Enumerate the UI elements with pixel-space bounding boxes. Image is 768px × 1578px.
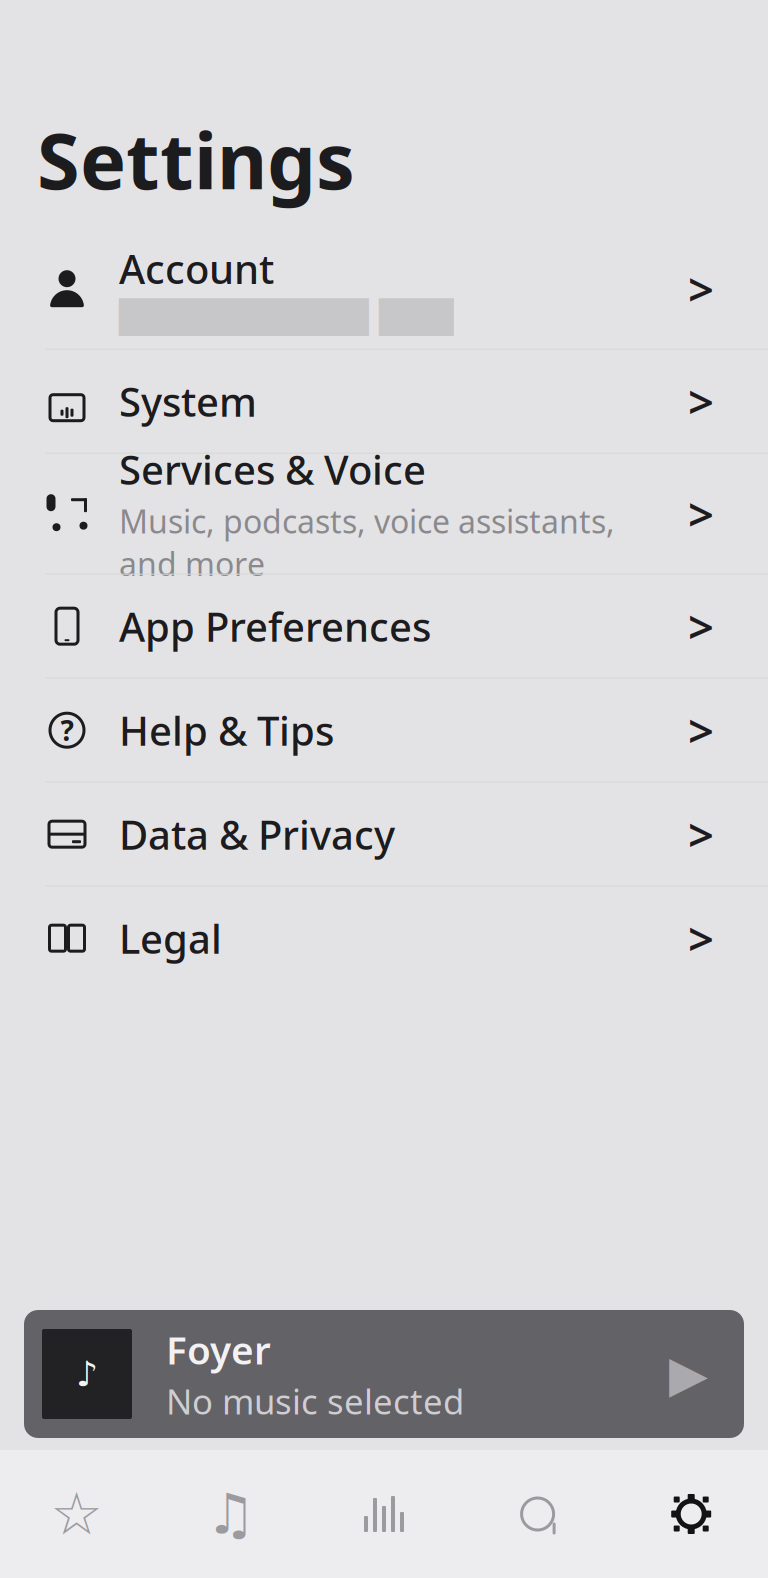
- staticText: Foyer: [166, 1324, 271, 1375]
- staticText: Data & Privacy: [119, 808, 395, 861]
- button[interactable]: ♪: [24, 1310, 744, 1438]
- button[interactable]: ?: [0, 679, 768, 782]
- staticText: >: [688, 908, 714, 968]
- button[interactable]: Services & Voice: [0, 454, 768, 574]
- staticText: No music selected: [166, 1378, 464, 1424]
- staticText: Settings: [37, 108, 355, 211]
- staticText: ♪: [76, 1354, 98, 1394]
- button[interactable]: Data & Privacy: [0, 783, 768, 886]
- staticText: ?: [60, 712, 73, 749]
- staticText: Services & Voice: [119, 443, 426, 496]
- staticText: >: [688, 371, 714, 431]
- staticText: Music, podcasts, voice assistants, and m…: [119, 500, 615, 585]
- button[interactable]: App Preferences: [0, 575, 768, 678]
- button[interactable]: Legal: [0, 887, 768, 990]
- staticText: Legal: [119, 912, 222, 965]
- button[interactable]: Account: [0, 229, 768, 349]
- staticText: Help & Tips: [119, 704, 334, 757]
- staticText: ▶: [669, 1345, 708, 1403]
- staticText: >: [688, 484, 714, 544]
- button[interactable]: Now Playing: [307, 1466, 461, 1562]
- staticText: >: [688, 259, 714, 319]
- staticText: System: [119, 375, 257, 428]
- staticText: >: [688, 804, 714, 864]
- staticText: App Preferences: [119, 600, 431, 653]
- button[interactable]: System: [0, 350, 768, 453]
- staticText: >: [688, 700, 714, 760]
- button[interactable]: Favorites: [0, 1466, 154, 1562]
- staticText: Account: [119, 242, 274, 295]
- staticText: >: [688, 596, 714, 656]
- staticText: ♫: [205, 1482, 255, 1546]
- button[interactable]: Search: [461, 1466, 614, 1562]
- button[interactable]: Settings: [614, 1466, 768, 1562]
- staticText: ☆: [50, 1481, 103, 1547]
- staticText: ██████████ ███: [119, 299, 454, 335]
- button[interactable]: Music: [154, 1466, 307, 1562]
